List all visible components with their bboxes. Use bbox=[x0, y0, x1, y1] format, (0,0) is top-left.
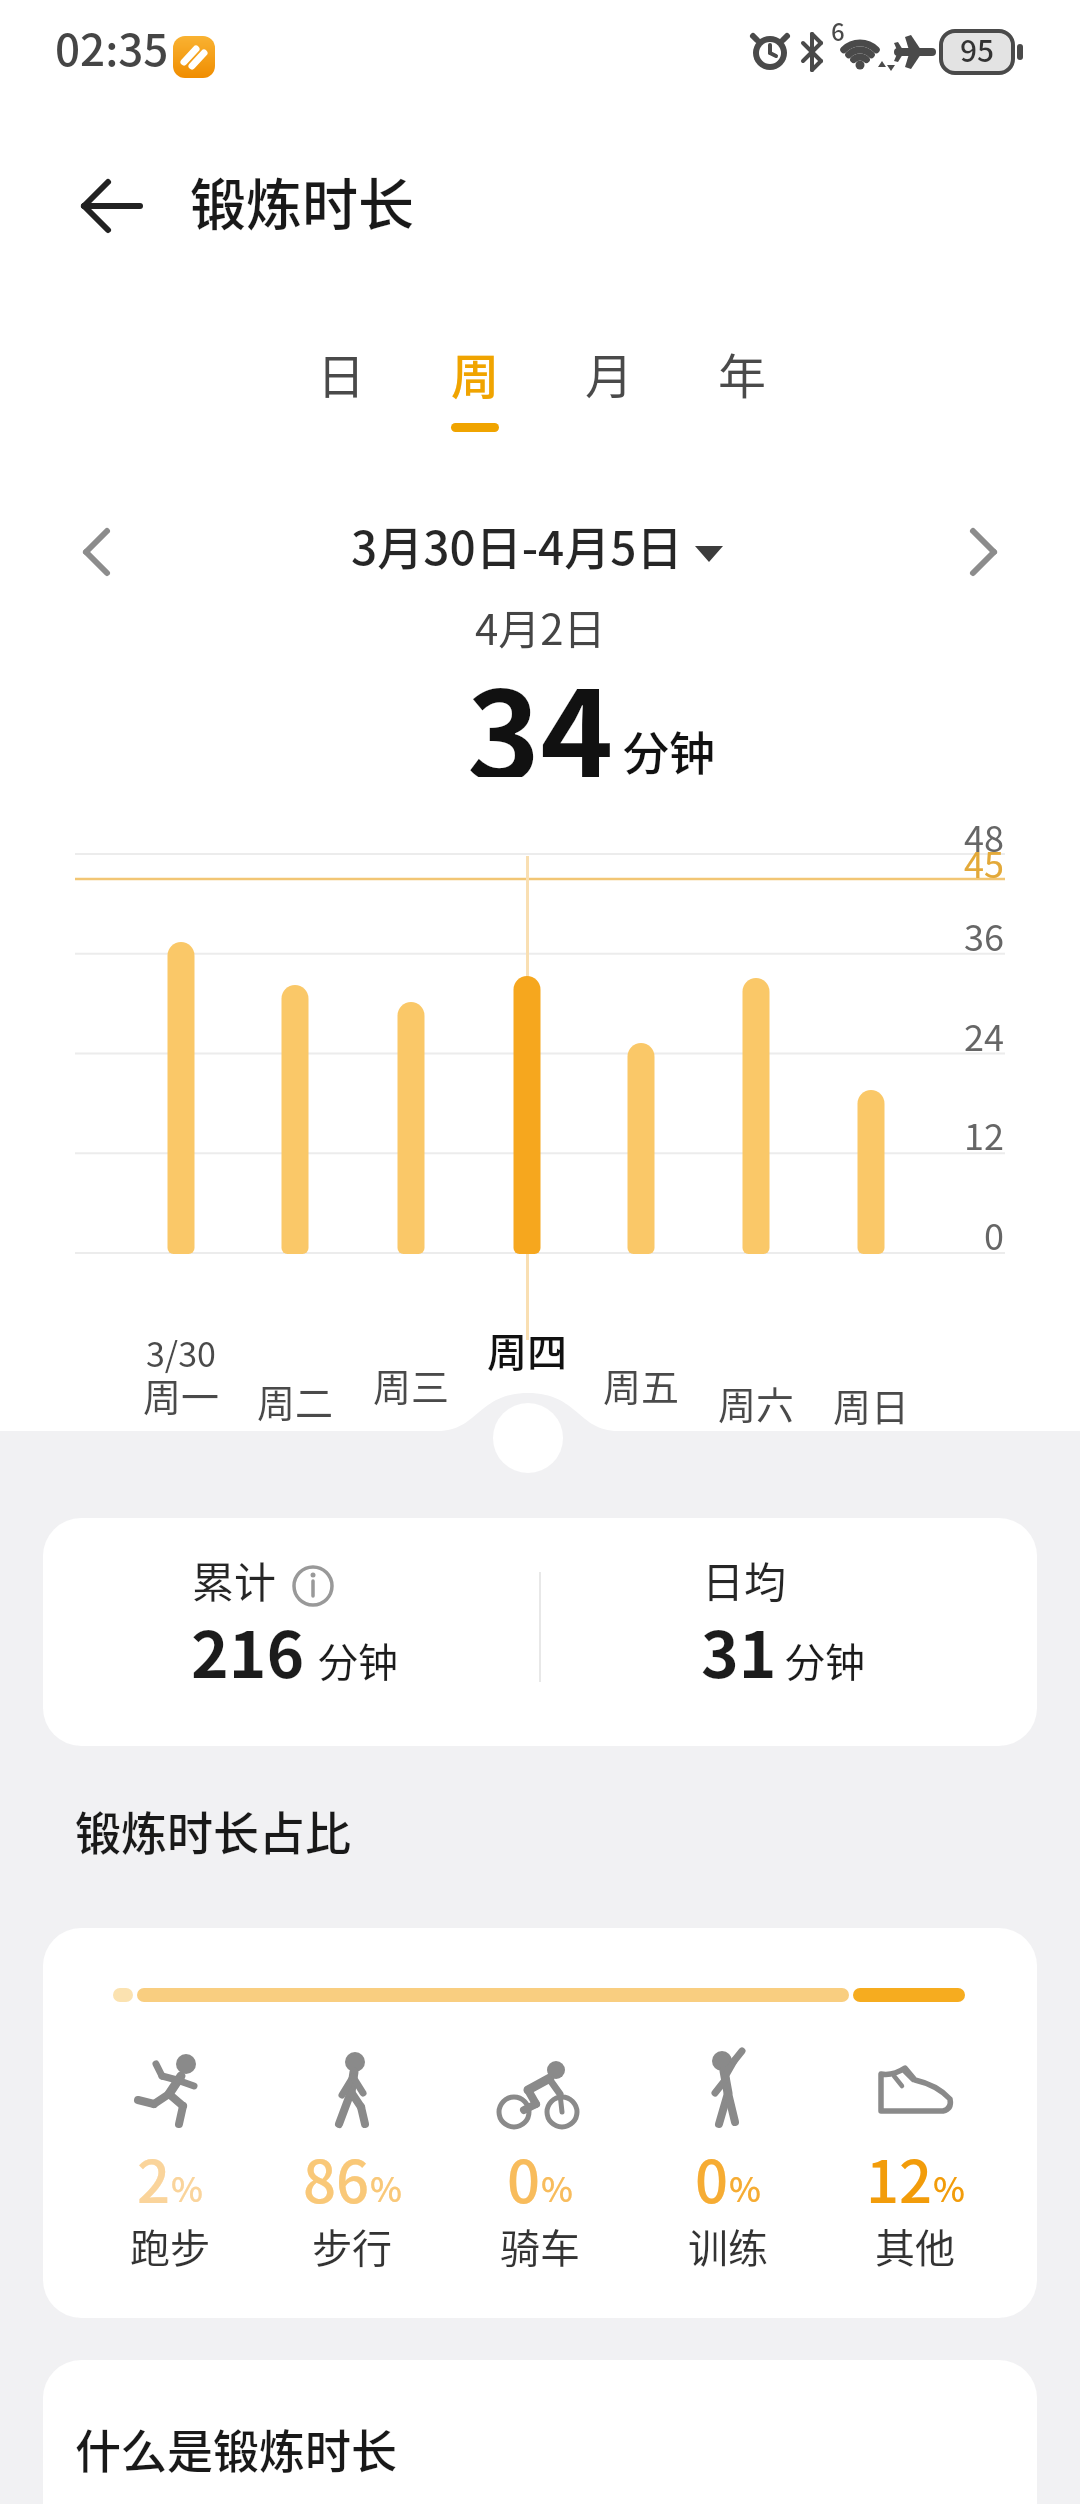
staticText: 周三 bbox=[373, 1357, 450, 1412]
staticText: 周日 bbox=[833, 1377, 910, 1432]
staticText: 跑步 bbox=[130, 2217, 210, 2275]
button[interactable] bbox=[62, 516, 132, 588]
staticText: 31 bbox=[701, 1604, 777, 1697]
staticText: 年 bbox=[718, 338, 767, 408]
staticText: 分钟 bbox=[318, 1631, 398, 1689]
staticText: 累计 bbox=[192, 1549, 277, 1610]
staticText: 3/30 bbox=[146, 1328, 216, 1377]
staticText: 骑车 bbox=[500, 2217, 580, 2275]
staticText: % bbox=[933, 2163, 965, 2212]
staticText: 36 bbox=[964, 909, 1004, 961]
staticText: 周 bbox=[451, 338, 500, 408]
staticText: 48 bbox=[964, 810, 1004, 862]
staticText: 0 bbox=[695, 2136, 729, 2220]
button[interactable]: 日 bbox=[91, 303, 591, 443]
button[interactable] bbox=[948, 516, 1018, 588]
button[interactable]: 3月30日-4月5日 bbox=[267, 475, 767, 615]
staticText: 86 bbox=[303, 2136, 370, 2220]
staticText: 什么是锻炼时长 bbox=[75, 2415, 397, 2482]
staticText: 日 bbox=[317, 338, 366, 408]
staticText: 周六 bbox=[718, 1375, 795, 1430]
staticText: % bbox=[370, 2163, 402, 2212]
button[interactable]: 年 bbox=[492, 303, 992, 443]
staticText: 分钟 bbox=[785, 1631, 865, 1689]
staticText: 2 bbox=[137, 2136, 171, 2220]
staticText: 月 bbox=[585, 338, 634, 408]
staticText: 6 bbox=[831, 13, 845, 48]
staticText: 其他 bbox=[875, 2217, 955, 2275]
staticText: 24 bbox=[964, 1009, 1004, 1061]
staticText: 训练 bbox=[688, 2217, 768, 2275]
staticText: 周一 bbox=[143, 1367, 220, 1422]
staticText: 45 bbox=[964, 836, 1004, 888]
staticText: 34 bbox=[467, 637, 614, 777]
staticText: % bbox=[729, 2163, 761, 2212]
staticText: 0 bbox=[984, 1208, 1004, 1260]
staticText: 95 bbox=[960, 27, 995, 70]
staticText: 4月2日 bbox=[475, 596, 606, 657]
staticText: 02:35 bbox=[55, 15, 169, 79]
staticText: 0 bbox=[507, 2136, 541, 2220]
staticText: % bbox=[541, 2163, 573, 2212]
staticText: 日均 bbox=[702, 1549, 787, 1610]
staticText: 216 bbox=[191, 1604, 305, 1697]
staticText: 锻炼时长占比 bbox=[75, 1797, 351, 1864]
button[interactable] bbox=[60, 170, 156, 242]
button[interactable] bbox=[288, 1561, 338, 1611]
staticText: 周二 bbox=[257, 1373, 334, 1428]
button[interactable]: 周 bbox=[225, 303, 725, 443]
staticText: 12 bbox=[964, 1108, 1004, 1160]
staticText: 周五 bbox=[603, 1357, 680, 1412]
staticText: 周四 bbox=[487, 1321, 567, 1379]
button[interactable]: 月 bbox=[359, 303, 859, 443]
staticText: 分钟 bbox=[623, 717, 715, 784]
staticText: % bbox=[171, 2163, 203, 2212]
staticText: 12 bbox=[866, 2136, 933, 2220]
staticText: 步行 bbox=[312, 2217, 392, 2275]
staticText: 3月30日-4月5日 bbox=[351, 512, 683, 579]
staticText: 锻炼时长 bbox=[190, 160, 414, 241]
